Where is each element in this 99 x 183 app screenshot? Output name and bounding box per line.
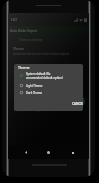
button[interactable]: Dark Theme xyxy=(14,90,83,95)
staticText: Theme xyxy=(13,46,24,51)
button[interactable]: CANCEL xyxy=(70,100,83,108)
staticText: HD xyxy=(11,17,17,22)
staticText: Dark Theme xyxy=(26,91,43,95)
button[interactable]: Home xyxy=(42,146,55,159)
staticText: System default (Re commended default opt… xyxy=(26,72,63,79)
staticText: Light Theme xyxy=(26,84,43,88)
button[interactable]: Back xyxy=(19,146,32,159)
button[interactable]: Add contact xyxy=(74,96,85,107)
button[interactable]: Light Theme xyxy=(14,83,83,88)
button[interactable]: Theme xyxy=(8,46,89,56)
staticText: System default (recommended default opti… xyxy=(13,52,70,56)
staticText: CANCEL xyxy=(72,102,83,106)
staticText: Theme xyxy=(18,65,30,70)
button[interactable]: System default (Re commended default opt… xyxy=(14,71,83,79)
staticText: Auto Dialer Expert xyxy=(10,29,38,33)
button[interactable]: Recent apps xyxy=(66,146,79,159)
staticText: Theme settings xyxy=(19,38,43,42)
staticText: Other settings xyxy=(19,108,41,112)
